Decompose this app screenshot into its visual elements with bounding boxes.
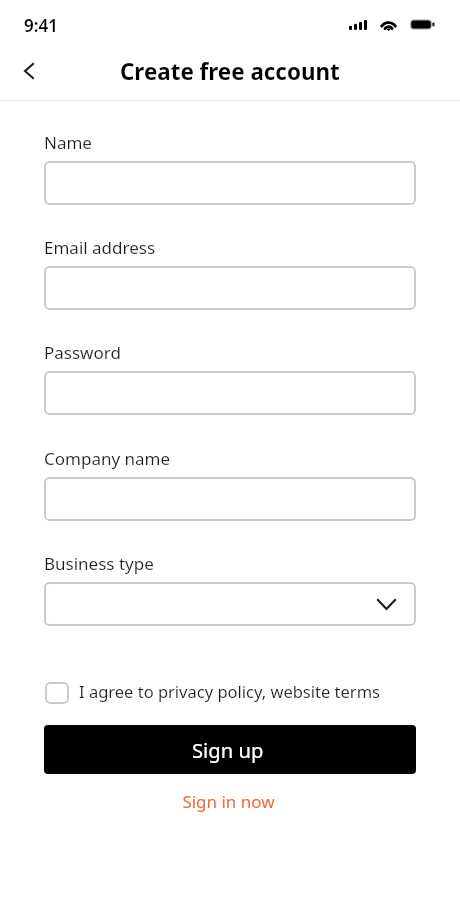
button[interactable]: Email address: [44, 266, 416, 310]
staticText: Name: [44, 131, 92, 154]
staticText: Sign in now: [182, 790, 275, 813]
button[interactable]: Back: [8, 50, 50, 92]
staticText: Email address: [44, 236, 156, 259]
button[interactable]: I agree to privacy policy, website terms: [44, 681, 416, 703]
staticText: Create free account: [120, 56, 340, 87]
button[interactable]: Sign up: [44, 725, 416, 774]
button[interactable]: Sign in now: [0, 786, 458, 816]
staticText: Sign up: [192, 736, 264, 764]
staticText: I agree to privacy policy, website terms: [79, 680, 380, 702]
staticText: 9:41: [24, 14, 58, 37]
staticText: Company name: [44, 447, 171, 470]
button[interactable]: Name: [44, 161, 416, 205]
button[interactable]: Company name: [44, 477, 416, 521]
button[interactable]: Business type: [44, 582, 416, 626]
staticText: Business type: [44, 552, 154, 575]
button[interactable]: Password: [44, 371, 416, 415]
staticText: Password: [44, 341, 121, 364]
